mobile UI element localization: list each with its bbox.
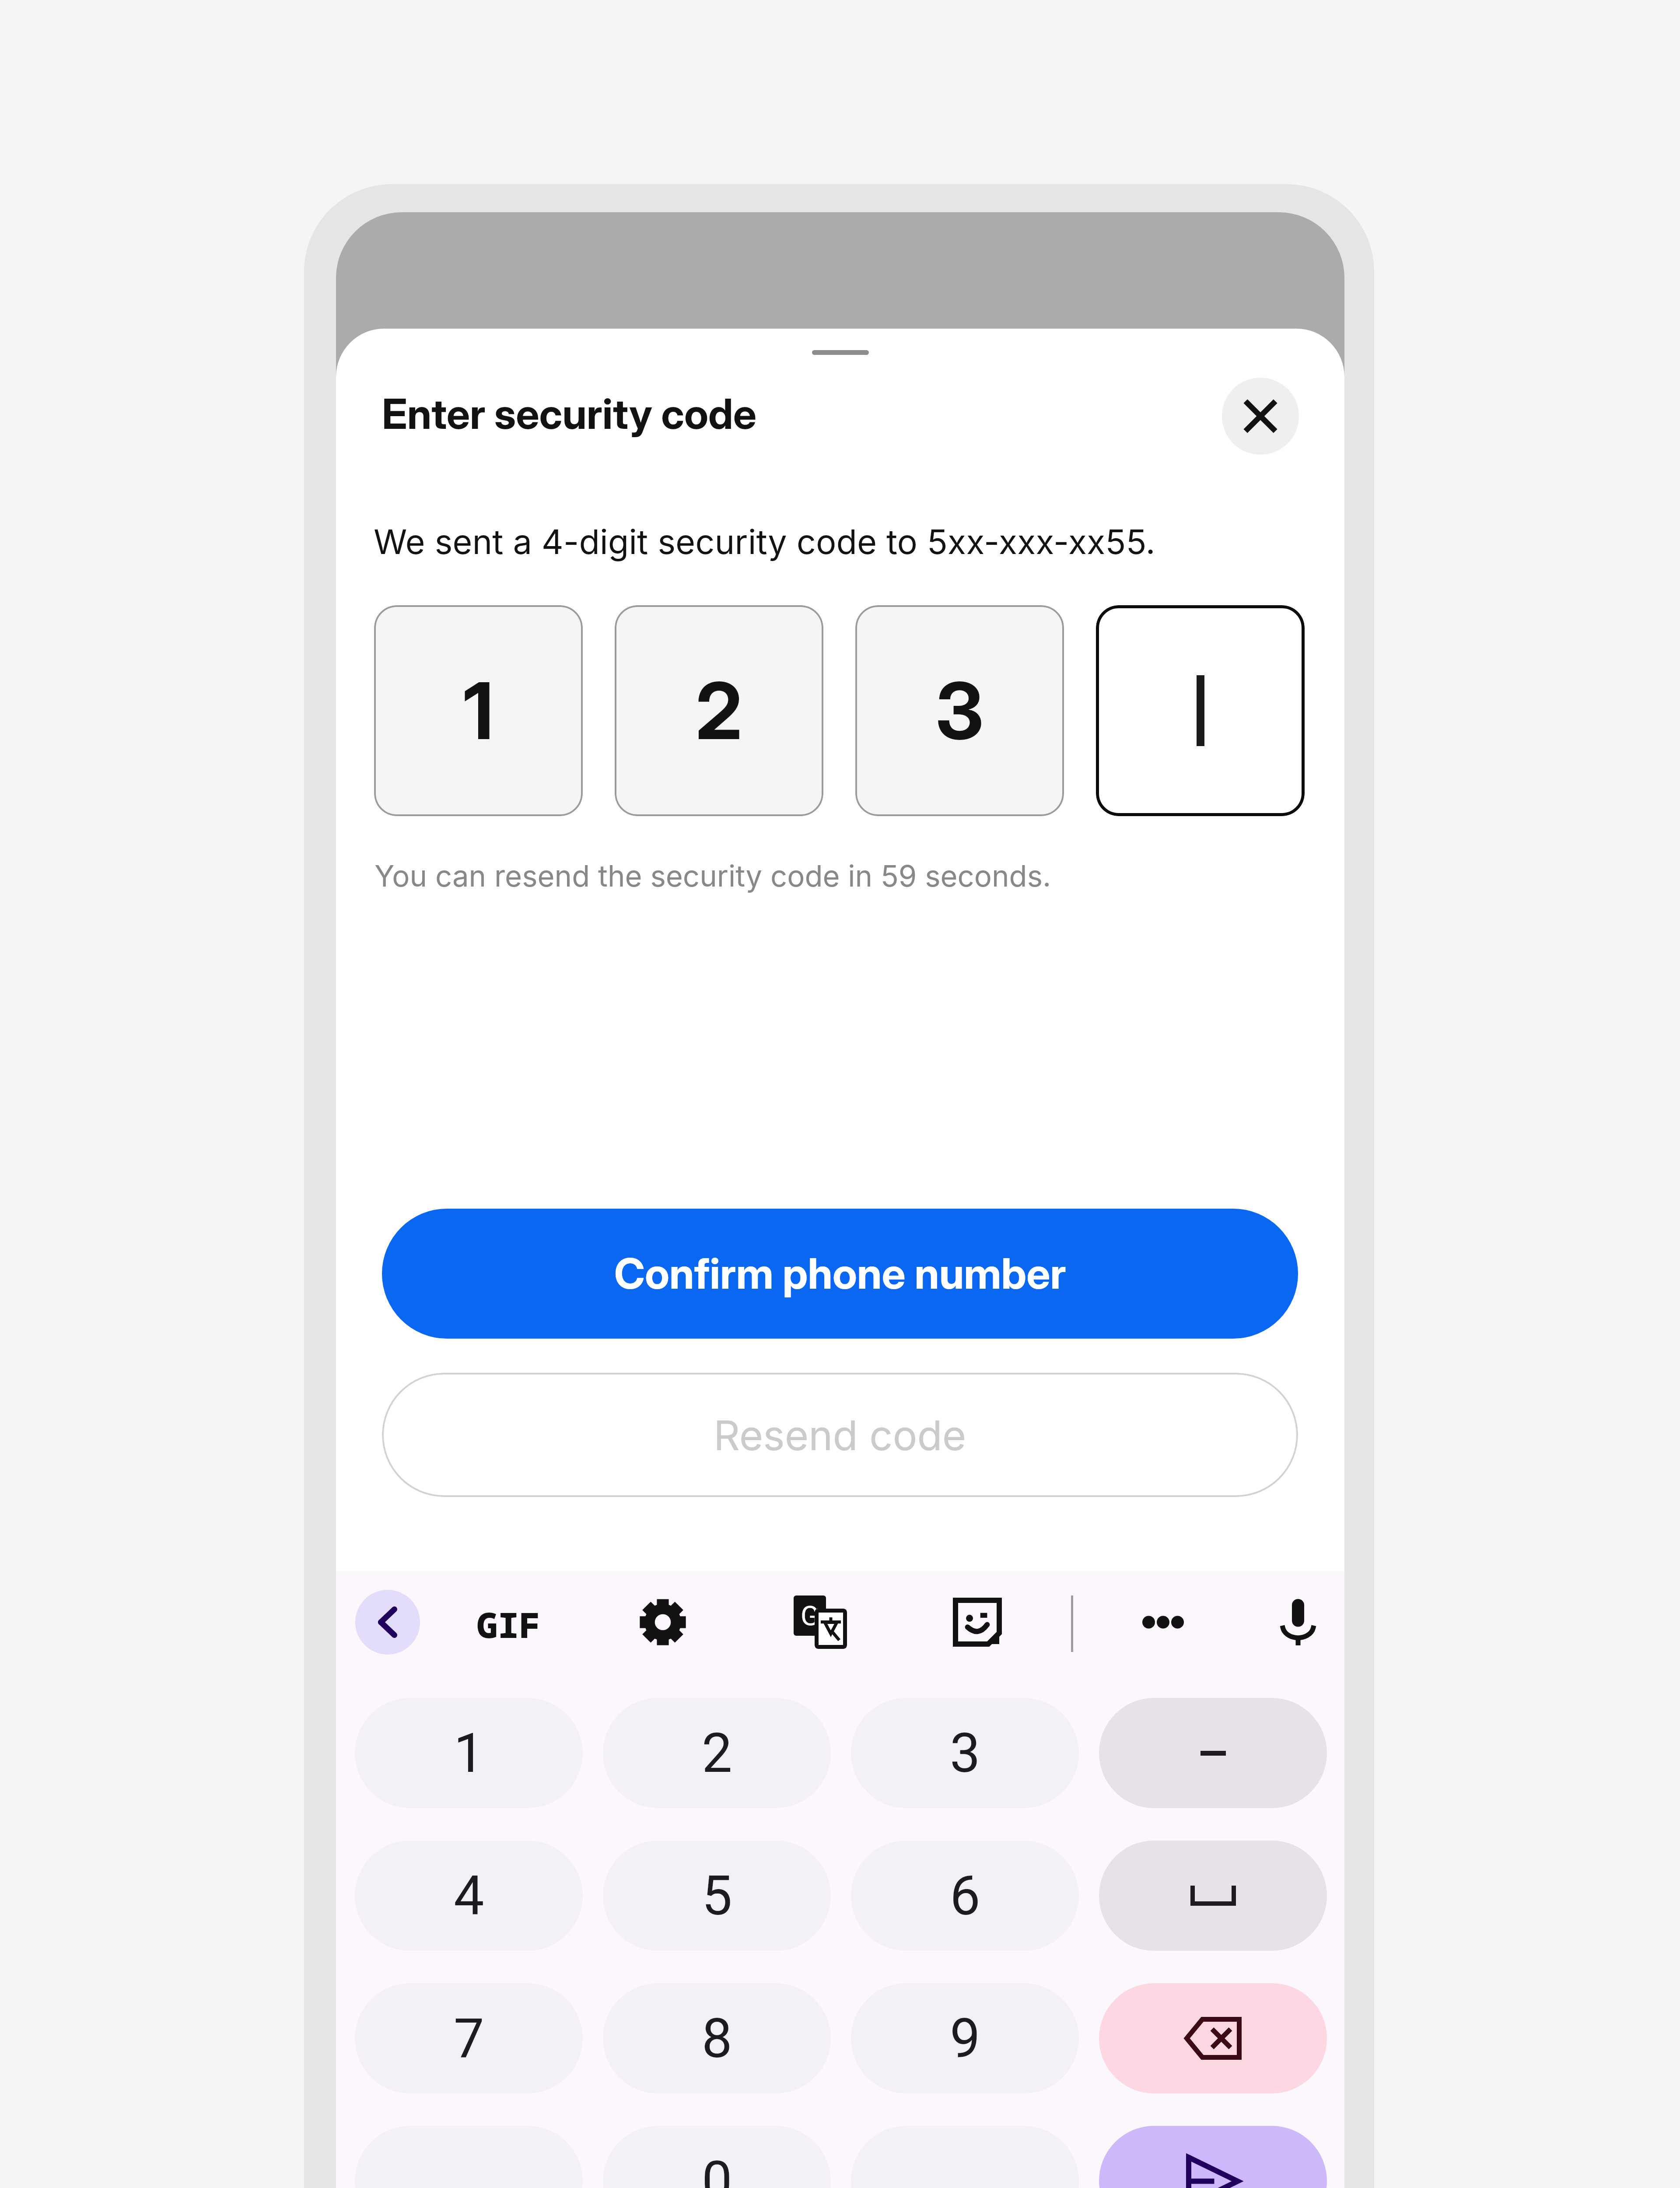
staticText: 1 xyxy=(463,664,494,758)
staticText: 3 xyxy=(935,664,984,758)
staticText: Enter security code xyxy=(382,389,757,439)
button[interactable]: Close xyxy=(1222,378,1299,455)
button[interactable]: Resend code xyxy=(382,1373,1298,1497)
button[interactable]: Settings xyxy=(630,1589,696,1655)
button[interactable]: 9 xyxy=(851,1983,1079,2093)
button[interactable]: Stickers xyxy=(945,1589,1010,1655)
button[interactable]: Confirm phone number xyxy=(382,1209,1298,1339)
button[interactable]: 2 xyxy=(615,605,823,816)
button[interactable]: 8 xyxy=(603,1983,831,2093)
staticText: Resend code xyxy=(714,1410,966,1460)
staticText: 0 xyxy=(702,2149,732,2188)
staticText: 8 xyxy=(702,2007,732,2070)
button[interactable]: Translate xyxy=(787,1589,853,1655)
staticText: 2 xyxy=(702,1722,732,1785)
staticText: 7 xyxy=(454,2007,484,2070)
button[interactable]: 1 xyxy=(374,605,583,816)
button[interactable]: 6 xyxy=(851,1841,1079,1951)
button[interactable]: 3 xyxy=(851,1698,1079,1808)
button[interactable] xyxy=(1096,605,1305,816)
staticText: 5 xyxy=(702,1864,732,1928)
button[interactable]: 1 xyxy=(355,1698,583,1808)
staticText: 1 xyxy=(454,1722,484,1785)
button[interactable]: GIF xyxy=(477,1601,541,1648)
staticText: Confirm phone number xyxy=(614,1248,1066,1299)
button[interactable]: Minus xyxy=(1099,1698,1327,1808)
button[interactable]: Voice input xyxy=(1265,1589,1331,1655)
staticText: G xyxy=(801,1600,819,1632)
button[interactable]: 3 xyxy=(855,605,1064,816)
button[interactable]: 5 xyxy=(603,1841,831,1951)
staticText: 2 xyxy=(696,664,742,758)
button[interactable]: 2 xyxy=(603,1698,831,1808)
button[interactable]: 4 xyxy=(355,1841,583,1951)
button[interactable]: Send xyxy=(1099,2126,1327,2188)
button[interactable]: Back xyxy=(355,1590,420,1655)
staticText: You can resend the security code in 59 s… xyxy=(374,858,1051,894)
button[interactable]: 7 xyxy=(355,1983,583,2093)
staticText: 9 xyxy=(950,2007,980,2070)
staticText: 6 xyxy=(950,1864,980,1928)
staticText: GIF xyxy=(477,1601,541,1648)
button[interactable]: Backspace xyxy=(1099,1983,1327,2093)
staticText: 3 xyxy=(950,1722,980,1785)
button[interactable]: 0 xyxy=(603,2126,831,2188)
button[interactable]: Space xyxy=(1099,1841,1327,1951)
staticText: We sent a 4-digit security code to 5xx-x… xyxy=(374,521,1155,562)
staticText: 4 xyxy=(454,1864,484,1928)
button[interactable]: More options xyxy=(1130,1589,1196,1655)
